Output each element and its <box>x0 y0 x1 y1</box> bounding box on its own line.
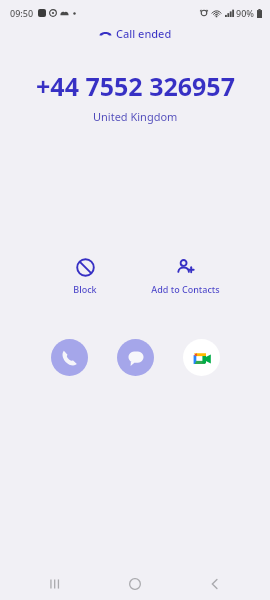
button[interactable]: Block <box>35 256 135 297</box>
button[interactable]: Video call with Google Meet <box>183 339 220 376</box>
staticText: Block <box>73 283 97 295</box>
button[interactable]: Back <box>191 568 239 600</box>
button[interactable]: Home <box>111 568 159 600</box>
staticText: 90% <box>236 7 254 19</box>
button[interactable]: Message <box>117 339 154 376</box>
staticText: +44 7552 326957 <box>36 69 235 103</box>
staticText: Call ended <box>116 26 172 41</box>
button[interactable]: Call <box>51 339 88 376</box>
staticText: 09:50 <box>10 7 34 19</box>
button[interactable]: Add to Contacts <box>135 256 235 297</box>
staticText: Add to Contacts <box>151 283 220 295</box>
button[interactable]: Recent apps <box>32 568 80 600</box>
staticText: United Kingdom <box>93 109 178 124</box>
